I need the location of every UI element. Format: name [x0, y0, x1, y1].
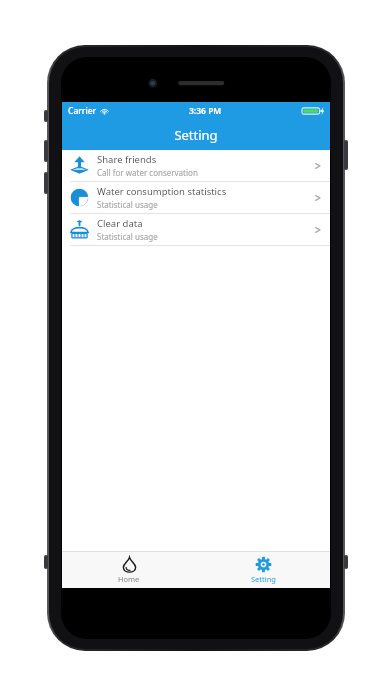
staticText: Share friends — [97, 153, 157, 166]
staticText: Home — [118, 574, 140, 584]
staticText: Carrier — [68, 105, 97, 117]
staticText: Statistical usage — [97, 199, 158, 210]
staticText: Clear data — [97, 217, 143, 230]
button[interactable]: Setting — [196, 552, 330, 588]
button[interactable]: Water consumption statistics — [62, 182, 330, 213]
staticText: 3:36 PM — [189, 105, 222, 117]
staticText: Call for water conservation — [97, 167, 198, 178]
button[interactable]: Share friends — [62, 150, 330, 181]
button[interactable]: Clear data — [62, 214, 330, 245]
button[interactable]: Home — [62, 552, 196, 588]
staticText: Setting — [174, 126, 218, 144]
staticText: Setting — [251, 574, 276, 584]
staticText: Statistical usage — [97, 231, 158, 242]
staticText: Water consumption statistics — [97, 185, 227, 198]
